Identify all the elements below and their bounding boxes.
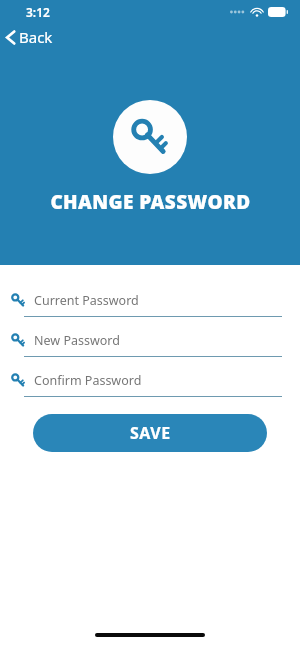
staticText: 3:12 <box>26 4 50 20</box>
staticText: Back <box>19 27 53 47</box>
button[interactable]: Confirm Password <box>0 367 300 397</box>
staticText: SAVE <box>130 422 171 444</box>
button[interactable]: New Password <box>0 327 300 357</box>
button[interactable]: SAVE <box>33 414 267 452</box>
staticText: CHANGE PASSWORD <box>50 189 251 215</box>
button[interactable]: Current Password <box>0 287 300 317</box>
staticText: Current Password <box>34 292 139 309</box>
button[interactable]: Back <box>0 24 63 50</box>
staticText: New Password <box>34 332 120 349</box>
staticText: Confirm Password <box>34 372 142 389</box>
